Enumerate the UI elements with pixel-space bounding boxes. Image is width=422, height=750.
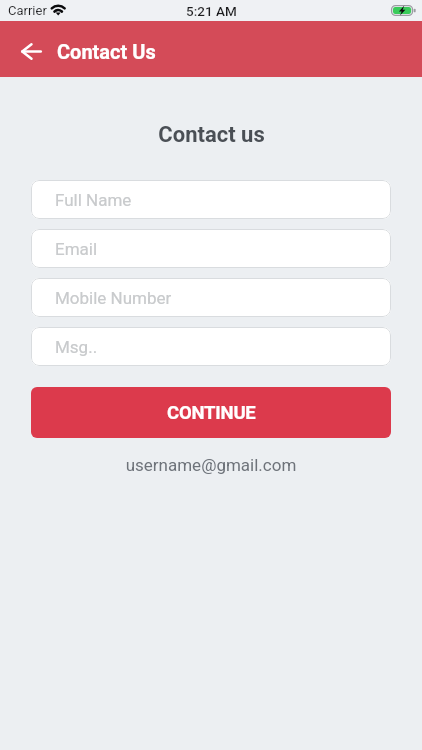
staticText: Full Name (55, 190, 132, 210)
staticText: Msg.. (55, 337, 98, 357)
button[interactable]: Back (12, 32, 50, 70)
button[interactable]: Email (31, 229, 391, 268)
button[interactable]: Mobile Number (31, 278, 391, 317)
button[interactable]: Full Name (31, 180, 391, 219)
button[interactable]: Msg.. (31, 327, 391, 366)
staticText: Contact Us (57, 40, 156, 63)
staticText: Mobile Number (55, 288, 172, 308)
button[interactable]: CONTINUE (31, 387, 391, 438)
staticText: Contact us (158, 122, 265, 148)
staticText: username@gmail.com (31, 455, 391, 475)
staticText: Carrier (8, 3, 47, 18)
staticText: Email (55, 239, 98, 259)
staticText: CONTINUE (167, 402, 256, 424)
staticText: 5:21 AM (186, 3, 237, 19)
